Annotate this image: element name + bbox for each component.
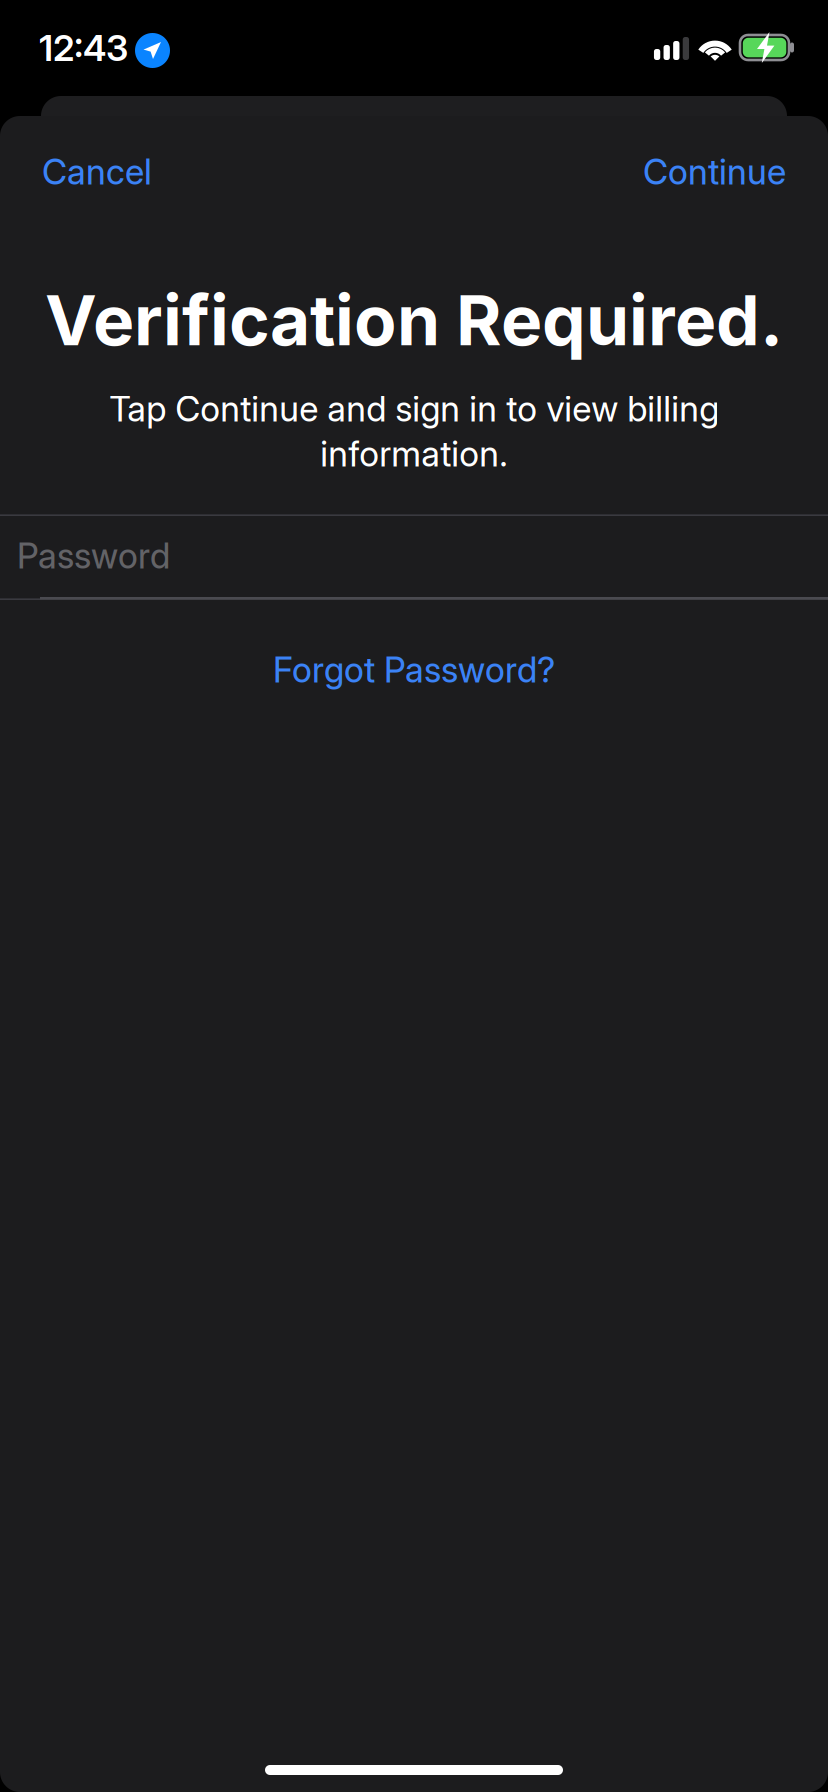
staticText: Forgot Password?: [273, 649, 555, 691]
staticText: Continue: [643, 151, 786, 193]
staticText: Cancel: [42, 151, 152, 193]
button[interactable]: Cancel: [42, 140, 202, 204]
button[interactable]: Password: [0, 514, 811, 598]
staticText: 12:43: [39, 26, 128, 70]
staticText: Tap Continue and sign in to view billing…: [109, 388, 719, 475]
staticText: Verification Required.: [45, 278, 783, 362]
staticText: Password: [17, 535, 170, 577]
button[interactable]: Continue: [586, 140, 786, 204]
button[interactable]: Forgot Password?: [214, 640, 614, 700]
